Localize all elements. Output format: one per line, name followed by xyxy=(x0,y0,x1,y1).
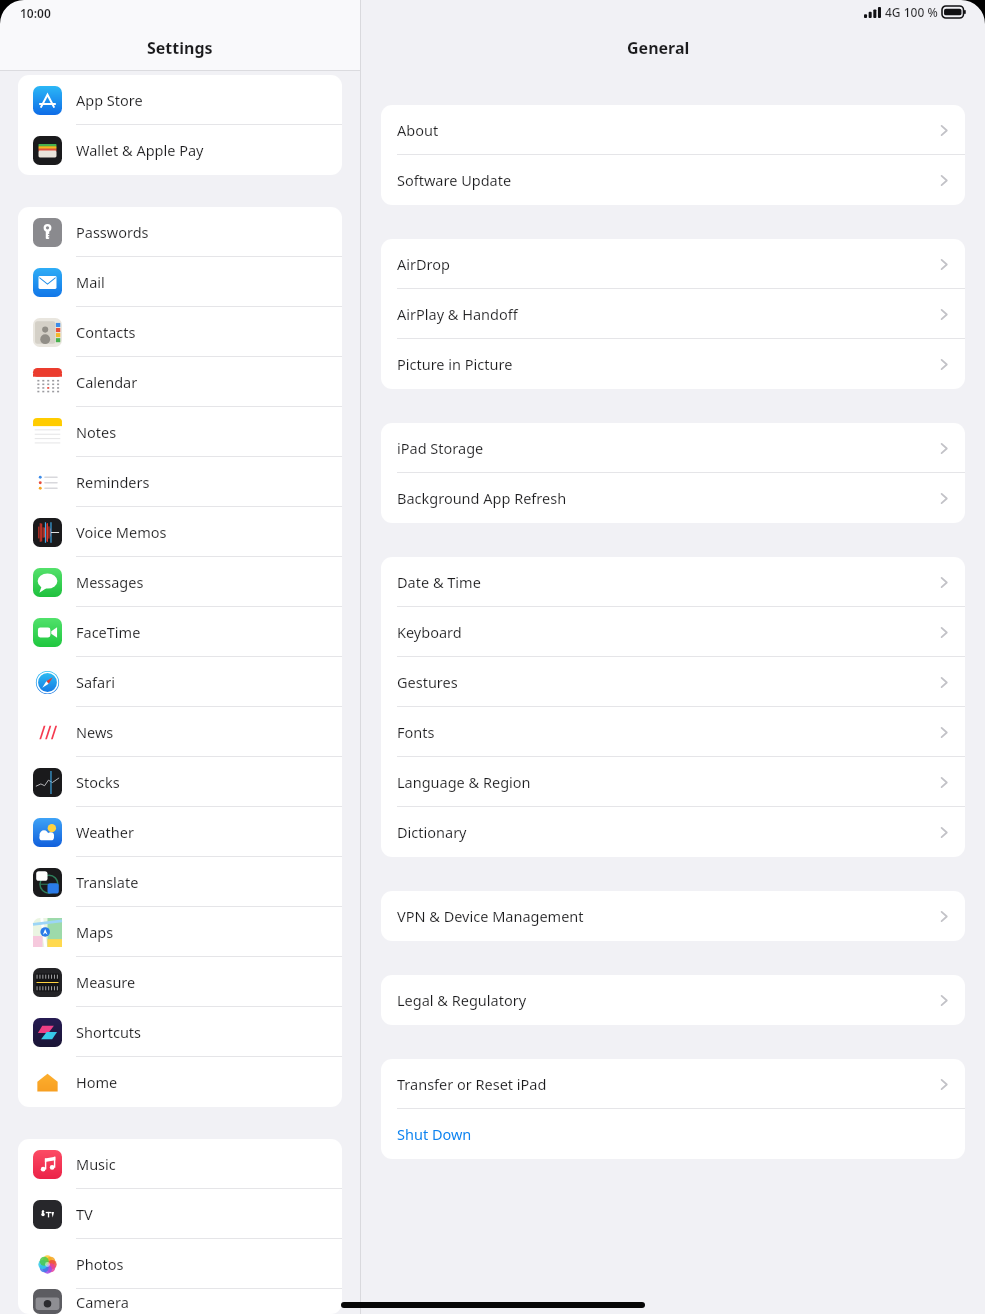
button[interactable]: Mail xyxy=(18,257,342,307)
button[interactable]: Weather xyxy=(18,807,342,857)
button[interactable]: About xyxy=(381,105,965,155)
staticText: App Store xyxy=(76,90,143,110)
staticText: News xyxy=(76,722,114,742)
staticText: Fonts xyxy=(397,722,435,742)
button[interactable]: Passwords xyxy=(18,207,342,257)
staticText: AirDrop xyxy=(397,254,450,274)
button[interactable]: Reminders xyxy=(18,457,342,507)
staticText: Picture in Picture xyxy=(397,354,513,374)
staticText: Gestures xyxy=(397,672,458,692)
button[interactable]: Camera xyxy=(18,1289,342,1314)
staticText: Calendar xyxy=(76,372,138,392)
staticText: Measure xyxy=(76,972,136,992)
button[interactable]: TV xyxy=(18,1189,342,1239)
staticText: Photos xyxy=(76,1254,124,1274)
button[interactable]: Translate xyxy=(18,857,342,907)
button[interactable]: Shut Down xyxy=(381,1109,965,1159)
staticText: Wallet & Apple Pay xyxy=(76,140,204,160)
button[interactable]: AirDrop xyxy=(381,239,965,289)
staticText: Shortcuts xyxy=(76,1022,142,1042)
button[interactable]: Background App Refresh xyxy=(381,473,965,523)
button[interactable]: Software Update xyxy=(381,155,965,205)
button[interactable]: Date & Time xyxy=(381,557,965,607)
button[interactable]: Maps xyxy=(18,907,342,957)
staticText: Shut Down xyxy=(397,1124,472,1144)
staticText: Dictionary xyxy=(397,822,467,842)
staticText: VPN & Device Management xyxy=(397,906,584,926)
button[interactable]: Voice Memos xyxy=(18,507,342,557)
staticText: 4G 100 % xyxy=(885,4,938,20)
staticText: Voice Memos xyxy=(76,522,167,542)
button[interactable]: Keyboard xyxy=(381,607,965,657)
staticText: Translate xyxy=(76,872,139,892)
staticText: AirPlay & Handoff xyxy=(397,304,518,324)
staticText: Contacts xyxy=(76,322,136,342)
button[interactable]: Language & Region xyxy=(381,757,965,807)
staticText: About xyxy=(397,120,439,140)
staticText: Home xyxy=(76,1072,118,1092)
staticText: Notes xyxy=(76,422,117,442)
staticText: Legal & Regulatory xyxy=(397,990,527,1010)
staticText: iPad Storage xyxy=(397,438,484,458)
staticText: Date & Time xyxy=(397,572,481,592)
button[interactable]: Messages xyxy=(18,557,342,607)
staticText: Music xyxy=(76,1154,116,1174)
button[interactable]: Picture in Picture xyxy=(381,339,965,389)
button[interactable]: AirPlay & Handoff xyxy=(381,289,965,339)
button[interactable]: News xyxy=(18,707,342,757)
staticText: Messages xyxy=(76,572,144,592)
staticText: Weather xyxy=(76,822,134,842)
button[interactable]: Home xyxy=(18,1057,342,1107)
button[interactable]: Stocks xyxy=(18,757,342,807)
button[interactable]: VPN & Device Management xyxy=(381,891,965,941)
button[interactable]: Safari xyxy=(18,657,342,707)
staticText: Settings xyxy=(147,37,213,59)
button[interactable]: iPad Storage xyxy=(381,423,965,473)
button[interactable]: Fonts xyxy=(381,707,965,757)
button[interactable]: Dictionary xyxy=(381,807,965,857)
button[interactable]: Music xyxy=(18,1139,342,1189)
button[interactable]: Legal & Regulatory xyxy=(381,975,965,1025)
staticText: TV xyxy=(76,1204,93,1224)
staticText: Maps xyxy=(76,922,114,942)
button[interactable]: Calendar xyxy=(18,357,342,407)
button[interactable]: FaceTime xyxy=(18,607,342,657)
button[interactable]: Gestures xyxy=(381,657,965,707)
staticText: 10:00 xyxy=(20,5,51,21)
button[interactable]: Measure xyxy=(18,957,342,1007)
button[interactable]: Notes xyxy=(18,407,342,457)
button[interactable]: Wallet & Apple Pay xyxy=(18,125,342,175)
staticText: Mail xyxy=(76,272,105,292)
staticText: Passwords xyxy=(76,222,149,242)
staticText: Software Update xyxy=(397,170,512,190)
staticText: Keyboard xyxy=(397,622,462,642)
staticText: General xyxy=(627,37,690,59)
staticText: FaceTime xyxy=(76,622,141,642)
staticText: Transfer or Reset iPad xyxy=(397,1074,547,1094)
staticText: Reminders xyxy=(76,472,150,492)
button[interactable]: App Store xyxy=(18,75,342,125)
button[interactable]: Transfer or Reset iPad xyxy=(381,1059,965,1109)
staticText: Background App Refresh xyxy=(397,488,567,508)
staticText: Language & Region xyxy=(397,772,531,792)
button[interactable]: Photos xyxy=(18,1239,342,1289)
button[interactable]: Shortcuts xyxy=(18,1007,342,1057)
staticText: Camera xyxy=(76,1292,129,1312)
staticText: Safari xyxy=(76,672,115,692)
button[interactable]: Contacts xyxy=(18,307,342,357)
staticText: Stocks xyxy=(76,772,120,792)
